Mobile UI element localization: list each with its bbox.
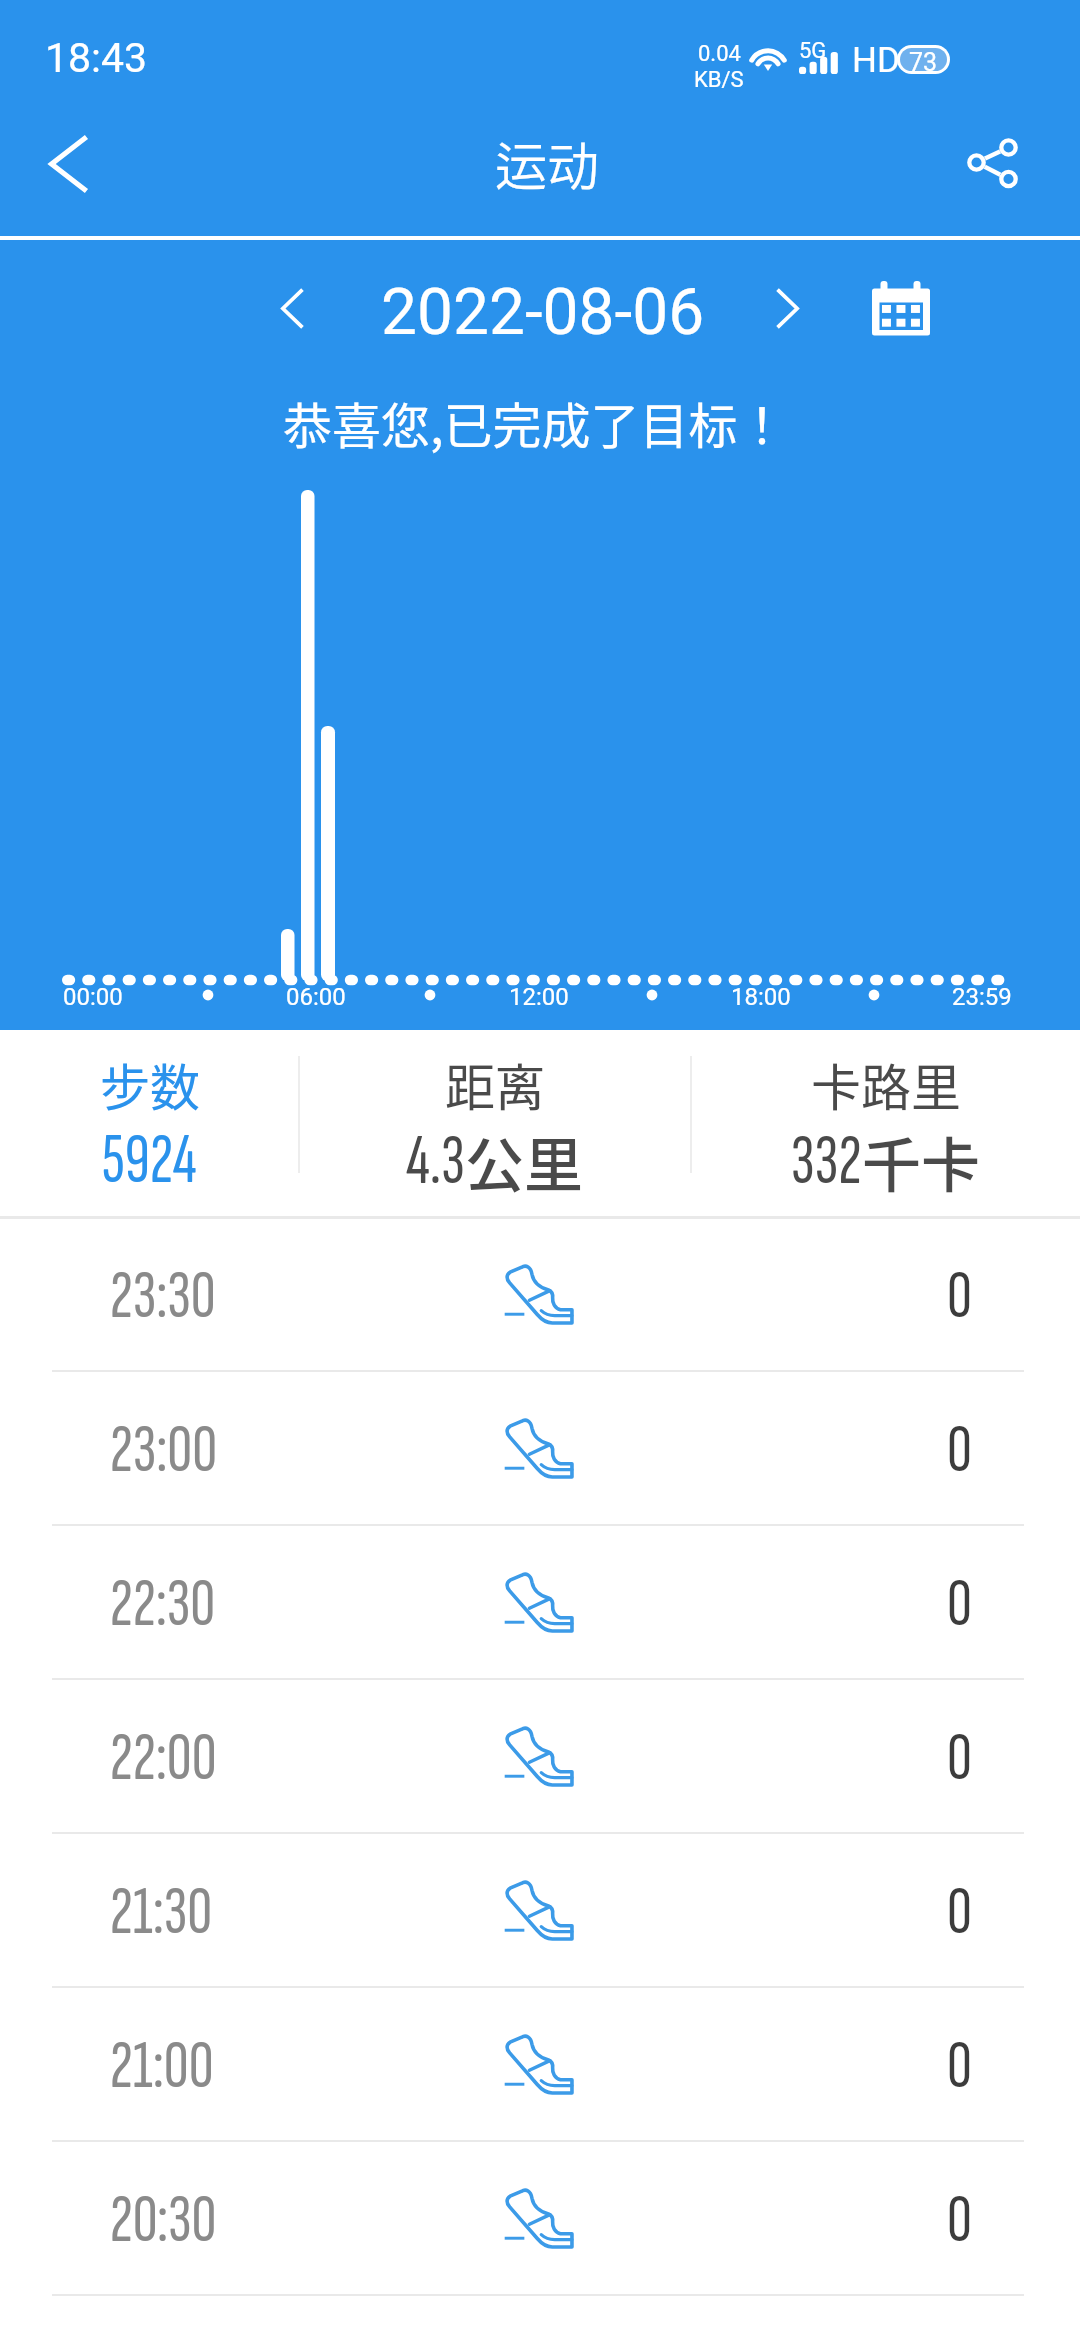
staticText: 卡路里 — [811, 1048, 961, 1120]
button[interactable]: 23:30 — [0, 1216, 1080, 1370]
button[interactable]: 22:30 — [0, 1524, 1080, 1678]
staticText: 0.04 — [698, 41, 741, 67]
staticText: 4.3 — [406, 1120, 465, 1204]
staticText: 千卡 — [862, 1119, 981, 1204]
staticText: 0 — [947, 1409, 972, 1492]
button[interactable]: 23:00 — [0, 1370, 1080, 1524]
button[interactable]: 21:00 — [0, 1986, 1080, 2140]
staticText: 5G — [799, 38, 827, 64]
staticText: 步数 — [100, 1048, 200, 1120]
staticText: 公里 — [465, 1119, 584, 1204]
staticText: 332 — [791, 1120, 862, 1204]
button[interactable]: Previous day — [252, 259, 332, 357]
button[interactable]: 步数 — [0, 1030, 299, 1204]
staticText: 21:00 — [110, 2025, 214, 2108]
staticText: 22:00 — [110, 1717, 217, 1800]
button[interactable]: Share — [934, 103, 1054, 223]
staticText: KB/S — [694, 67, 744, 93]
staticText: 距离 — [445, 1048, 545, 1120]
staticText: 12:00 — [509, 983, 569, 1011]
staticText: 2022-08-06 — [381, 275, 705, 350]
staticText: 0 — [947, 2179, 972, 2262]
staticText: 23:59 — [952, 983, 1012, 1011]
staticText: 0 — [947, 1717, 972, 1800]
staticText: 18:43 — [45, 34, 148, 82]
staticText: 00:00 — [63, 983, 123, 1011]
button[interactable]: 卡路里 — [691, 1030, 1080, 1205]
staticText: 20:30 — [110, 2179, 217, 2262]
button[interactable]: 20:30 — [0, 2140, 1080, 2294]
staticText: HD — [852, 40, 900, 81]
staticText: 恭喜您,已完成了目标！ — [283, 387, 787, 458]
staticText: 5924 — [102, 1119, 197, 1203]
button[interactable]: 距离 — [299, 1030, 691, 1205]
button[interactable]: 21:30 — [0, 1832, 1080, 1986]
staticText: 23:30 — [110, 1255, 216, 1338]
staticText: 06:00 — [286, 983, 346, 1011]
staticText: 0 — [947, 1563, 972, 1646]
staticText: 23:00 — [110, 1409, 218, 1492]
staticText: 运动 — [495, 126, 600, 201]
staticText: 0 — [947, 1871, 972, 1954]
button[interactable]: Back — [8, 104, 128, 224]
button[interactable]: Next day — [748, 259, 828, 357]
staticText: 0 — [947, 2025, 972, 2108]
staticText: 21:30 — [110, 1871, 213, 1954]
staticText: 73 — [909, 48, 938, 71]
staticText: 22:30 — [110, 1563, 216, 1646]
button[interactable]: Calendar — [848, 258, 954, 358]
staticText: 18:00 — [731, 983, 791, 1011]
button[interactable]: 22:00 — [0, 1678, 1080, 1832]
staticText: 0 — [947, 1255, 972, 1338]
